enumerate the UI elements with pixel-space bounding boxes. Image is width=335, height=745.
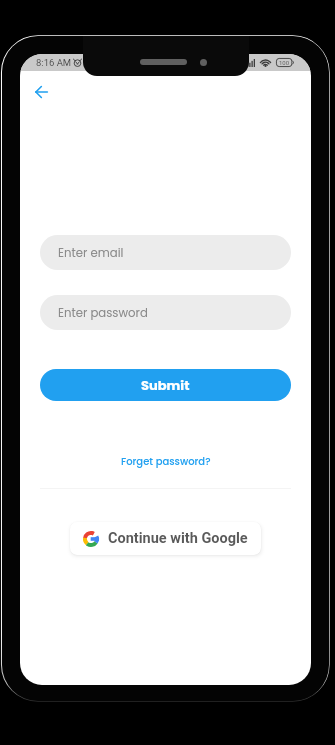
button[interactable]: Enter password: [40, 295, 291, 330]
button[interactable]: Enter email: [40, 235, 291, 270]
button[interactable]: Back: [28, 79, 54, 105]
staticText: Submit: [141, 376, 190, 394]
staticText: Continue with Google: [108, 530, 248, 547]
button[interactable]: Submit: [40, 369, 291, 401]
staticText: Enter password: [58, 305, 148, 321]
button[interactable]: Forget password?: [121, 454, 211, 468]
staticText: Enter email: [58, 245, 124, 261]
button[interactable]: Continue with Google: [70, 522, 261, 555]
staticText: 100: [279, 59, 290, 66]
staticText: 8:16 AM: [36, 57, 72, 68]
